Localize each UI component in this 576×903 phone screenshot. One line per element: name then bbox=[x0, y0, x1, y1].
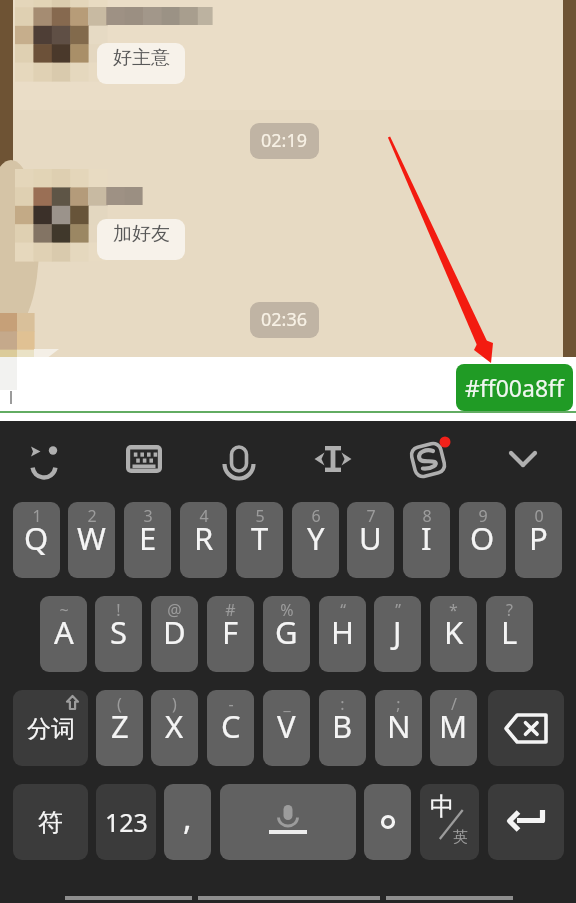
button[interactable]: ~ bbox=[40, 596, 87, 672]
staticText: 1 bbox=[32, 505, 42, 527]
staticText: M bbox=[439, 705, 468, 747]
staticText: 中 bbox=[430, 791, 455, 822]
staticText: E bbox=[139, 517, 157, 559]
staticText: D bbox=[163, 611, 186, 653]
staticText: “ bbox=[340, 599, 346, 621]
staticText: I bbox=[421, 517, 432, 559]
button[interactable]: ” bbox=[374, 596, 421, 672]
button[interactable]: Space bbox=[220, 784, 356, 860]
staticText: 英 bbox=[453, 828, 468, 847]
button[interactable]: 好主意 bbox=[97, 43, 185, 84]
button[interactable]: ; bbox=[375, 690, 422, 766]
button[interactable]: 7 bbox=[347, 502, 394, 578]
button[interactable]: “ bbox=[319, 596, 366, 672]
staticText: * bbox=[449, 599, 458, 621]
button[interactable]: ( bbox=[96, 690, 143, 766]
staticText: L bbox=[501, 611, 518, 653]
button[interactable]: Keyboard layout bbox=[118, 433, 170, 485]
staticText: 123 bbox=[105, 805, 148, 839]
button[interactable]: % bbox=[263, 596, 310, 672]
button[interactable]: Hide keyboard bbox=[497, 433, 549, 485]
button[interactable]: 123 bbox=[96, 784, 156, 860]
button[interactable]: #ff00a8ff bbox=[456, 364, 573, 411]
staticText: T bbox=[251, 517, 269, 559]
staticText: Y bbox=[307, 517, 325, 559]
staticText: , bbox=[183, 796, 192, 840]
staticText: 3 bbox=[143, 505, 153, 527]
staticText: Z bbox=[111, 705, 129, 747]
button[interactable]: 分词 bbox=[13, 690, 88, 766]
staticText: A bbox=[54, 611, 74, 653]
staticText: J bbox=[393, 611, 402, 653]
staticText: G bbox=[275, 611, 298, 653]
staticText: C bbox=[221, 705, 241, 747]
staticText: 符 bbox=[38, 807, 63, 838]
button[interactable]: _ bbox=[263, 690, 310, 766]
button[interactable]: - bbox=[207, 690, 254, 766]
staticText: _ bbox=[283, 693, 291, 715]
staticText: F bbox=[222, 611, 239, 653]
button[interactable]: @ bbox=[151, 596, 198, 672]
button[interactable]: Chinese English toggle bbox=[420, 784, 479, 860]
staticText: 加好友 bbox=[113, 222, 170, 246]
button[interactable]: / bbox=[430, 690, 477, 766]
button[interactable] bbox=[364, 784, 411, 860]
button[interactable]: : bbox=[319, 690, 366, 766]
staticText: / bbox=[451, 693, 457, 715]
button[interactable]: Sogou menu bbox=[402, 433, 454, 485]
button[interactable]: , bbox=[164, 784, 211, 860]
staticText: Q bbox=[24, 517, 49, 559]
staticText: H bbox=[331, 611, 354, 653]
staticText: : bbox=[340, 693, 345, 715]
button[interactable]: Voice input bbox=[213, 433, 265, 485]
staticText: 分词 bbox=[27, 714, 75, 744]
button[interactable]: ? bbox=[486, 596, 533, 672]
staticText: #ff00a8ff bbox=[465, 372, 564, 403]
staticText: @ bbox=[167, 599, 182, 621]
staticText: ) bbox=[172, 693, 177, 715]
button[interactable]: Emoji bbox=[18, 433, 70, 485]
button[interactable]: 符 bbox=[13, 784, 88, 860]
button[interactable]: 5 bbox=[236, 502, 283, 578]
staticText: 7 bbox=[366, 505, 376, 527]
staticText: 9 bbox=[478, 505, 488, 527]
staticText: O bbox=[470, 517, 495, 559]
button[interactable]: 9 bbox=[459, 502, 506, 578]
button[interactable]: Backspace bbox=[488, 690, 564, 766]
button[interactable]: Enter bbox=[488, 784, 564, 860]
button[interactable]: 3 bbox=[124, 502, 171, 578]
staticText: ~ bbox=[59, 599, 69, 621]
button[interactable]: ) bbox=[151, 690, 198, 766]
button[interactable]: 4 bbox=[180, 502, 227, 578]
staticText: B bbox=[332, 705, 353, 747]
staticText: R bbox=[194, 517, 214, 559]
button[interactable]: 加好友 bbox=[97, 219, 185, 260]
button[interactable]: 1 bbox=[13, 502, 60, 578]
staticText: ( bbox=[117, 693, 122, 715]
button[interactable]: ! bbox=[95, 596, 142, 672]
staticText: 02:36 bbox=[261, 307, 308, 332]
staticText: V bbox=[277, 705, 296, 747]
button[interactable]: Move cursor bbox=[307, 433, 359, 485]
staticText: K bbox=[444, 611, 464, 653]
staticText: 2 bbox=[87, 505, 97, 527]
staticText: # bbox=[225, 599, 236, 621]
staticText: W bbox=[77, 517, 106, 559]
staticText: 6 bbox=[311, 505, 321, 527]
button[interactable]: 6 bbox=[292, 502, 339, 578]
button[interactable]: # bbox=[207, 596, 254, 672]
staticText: 5 bbox=[255, 505, 265, 527]
staticText: 8 bbox=[422, 505, 432, 527]
staticText: ; bbox=[396, 693, 401, 715]
staticText: N bbox=[387, 705, 411, 747]
button[interactable]: * bbox=[430, 596, 477, 672]
staticText: ” bbox=[395, 599, 401, 621]
staticText: U bbox=[359, 517, 382, 559]
button[interactable]: 0 bbox=[515, 502, 562, 578]
button[interactable]: 8 bbox=[403, 502, 450, 578]
staticText: 4 bbox=[199, 505, 209, 527]
staticText: X bbox=[165, 705, 184, 747]
button[interactable]: 2 bbox=[68, 502, 115, 578]
staticText: % bbox=[280, 599, 294, 621]
staticText: S bbox=[110, 611, 128, 653]
